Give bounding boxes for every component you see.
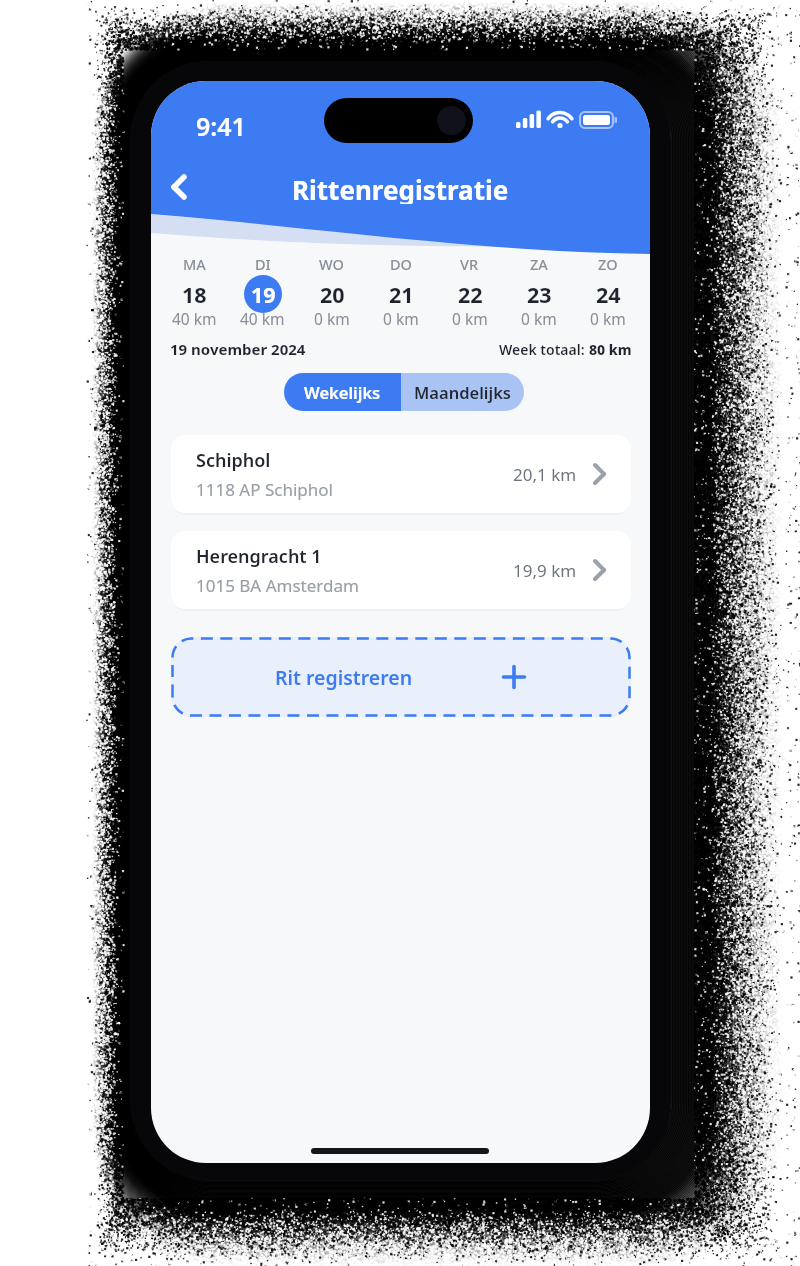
- staticText: 0 km: [521, 308, 557, 329]
- button[interactable]: [161, 169, 197, 205]
- staticText: 23: [527, 280, 552, 309]
- staticText: 20,1 km: [513, 463, 577, 486]
- button[interactable]: DI: [228, 254, 297, 334]
- button[interactable]: Rit registreren: [171, 637, 631, 717]
- staticText: Maandelijks: [414, 381, 511, 403]
- button[interactable]: Wekelijks: [284, 373, 401, 411]
- staticText: 9:41: [196, 109, 246, 137]
- staticText: MA: [183, 254, 206, 274]
- button[interactable]: VR: [435, 254, 504, 334]
- staticText: Wekelijks: [304, 381, 381, 403]
- button[interactable]: WO: [297, 254, 366, 334]
- staticText: 0 km: [590, 308, 626, 329]
- button[interactable]: ZA: [504, 254, 573, 334]
- staticText: VR: [460, 254, 479, 274]
- button[interactable]: ZO: [573, 254, 642, 334]
- staticText: 1015 BA Amsterdam: [196, 574, 359, 597]
- staticText: ZO: [598, 254, 618, 274]
- staticText: 20: [320, 280, 345, 309]
- staticText: 21: [389, 280, 414, 309]
- staticText: WO: [319, 254, 344, 274]
- button[interactable]: MA: [160, 254, 228, 334]
- staticText: DI: [255, 254, 271, 274]
- button[interactable]: Maandelijks: [401, 373, 524, 411]
- staticText: Rittenregistratie: [292, 172, 509, 204]
- staticText: 24: [596, 280, 621, 309]
- button[interactable]: Herengracht 1: [171, 531, 631, 609]
- staticText: 0 km: [452, 308, 488, 329]
- staticText: 80 km: [589, 340, 632, 359]
- staticText: 18: [182, 280, 207, 309]
- staticText: 40 km: [240, 308, 285, 329]
- staticText: 0 km: [314, 308, 350, 329]
- staticText: 40 km: [172, 308, 217, 329]
- staticText: Herengracht 1: [196, 544, 322, 569]
- button[interactable]: DO: [366, 254, 435, 334]
- staticText: Rit registreren: [275, 664, 413, 691]
- staticText: 19 november 2024: [170, 339, 306, 359]
- staticText: 19: [251, 280, 276, 309]
- button[interactable]: Schiphol: [171, 435, 631, 513]
- staticText: 1118 AP Schiphol: [196, 478, 333, 501]
- staticText: Schiphol: [196, 448, 271, 473]
- staticText: 19,9 km: [513, 559, 577, 582]
- staticText: 22: [458, 280, 483, 309]
- staticText: DO: [390, 254, 412, 274]
- staticText: 0 km: [383, 308, 419, 329]
- staticText: ZA: [530, 254, 548, 274]
- staticText: Week totaal:: [499, 340, 589, 359]
